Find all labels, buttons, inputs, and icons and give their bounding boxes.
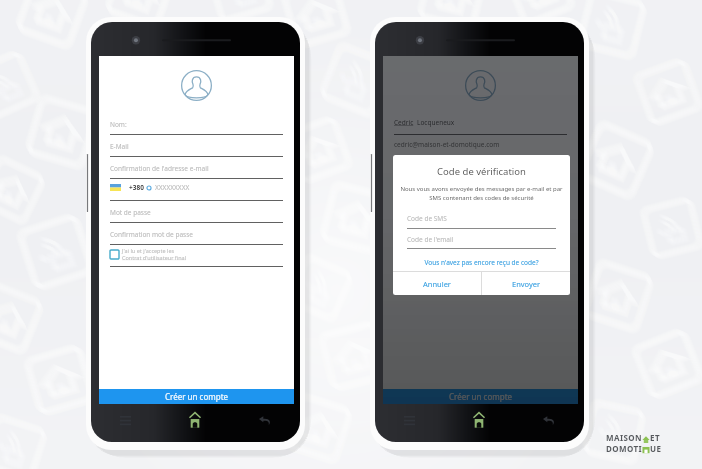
button[interactable]: Menu: [375, 404, 444, 442]
staticText: Mot de passe: [110, 208, 151, 217]
staticText: J'ai lu et j'accepte les: [122, 247, 175, 254]
staticText: DOMOTI: [606, 443, 642, 454]
button[interactable]: Back: [230, 404, 300, 442]
staticText: Créer un compte: [449, 391, 513, 402]
staticText: MAISON: [606, 432, 642, 443]
staticText: Code de l'email: [407, 235, 454, 244]
staticText: +380: [129, 183, 144, 192]
button[interactable]: Menu: [91, 404, 160, 442]
staticText: Cedric: [394, 118, 414, 127]
staticText: Nous vous avons envoyée des messages par…: [398, 185, 565, 202]
staticText: E-Mail: [110, 142, 129, 151]
staticText: UE: [650, 443, 662, 454]
button[interactable]: Créer un compte: [99, 389, 294, 404]
staticText: Code de SMS: [407, 214, 447, 223]
staticText: Vous n'avez pas encore reçu de code?: [424, 258, 539, 267]
button[interactable]: J'ai lu et j'accepte les: [110, 247, 187, 261]
staticText: Code de vérification: [393, 165, 570, 178]
button[interactable]: Vous n'avez pas encore reçu de code?: [393, 258, 570, 267]
staticText: Nom:: [110, 120, 127, 129]
staticText: ET: [650, 432, 660, 443]
staticText: Annuler: [423, 279, 451, 289]
staticText: Locqueneux: [417, 118, 455, 127]
button[interactable]: Home: [444, 404, 514, 442]
staticText: XXXXXXXXX: [155, 183, 190, 192]
staticText: Contrat d'utilisateur final: [122, 254, 187, 261]
button[interactable]: Home: [160, 404, 230, 442]
staticText: cedric@maison-et-domotique.com: [394, 140, 500, 149]
staticText: Confirmation mot de passe: [110, 230, 193, 239]
staticText: Créer un compte: [165, 391, 229, 402]
staticText: Confirmation de l'adresse e-mail: [110, 164, 209, 173]
staticText: Envoyer: [512, 279, 541, 289]
button[interactable]: Annuler: [393, 272, 481, 295]
button[interactable]: Back: [514, 404, 584, 442]
button[interactable]: Envoyer: [482, 272, 570, 295]
